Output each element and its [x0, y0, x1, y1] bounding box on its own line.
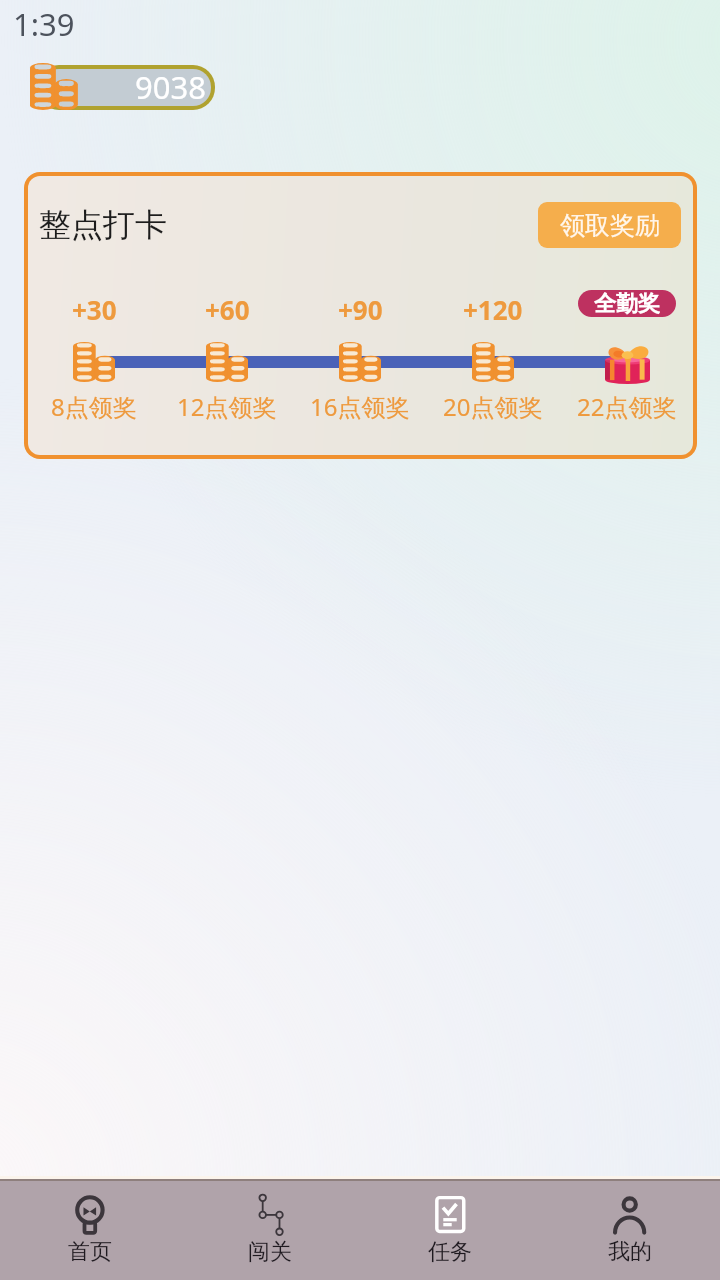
staticText: 整点打卡: [39, 205, 167, 245]
staticText: 20点领奖: [443, 390, 543, 423]
staticText: 9038: [135, 69, 206, 103]
staticText: 12点领奖: [177, 390, 277, 423]
staticText: 我的: [608, 1238, 652, 1266]
staticText: 闯关: [248, 1238, 292, 1266]
button[interactable]: Home: [0, 1181, 180, 1280]
staticText: 首页: [68, 1238, 112, 1266]
staticText: 16点领奖: [310, 390, 410, 423]
button[interactable]: Levels: [180, 1181, 360, 1280]
staticText: 领取奖励: [560, 210, 660, 241]
staticText: +60: [205, 292, 250, 327]
staticText: +120: [463, 292, 523, 327]
staticText: 22点领奖: [577, 390, 677, 423]
staticText: +90: [338, 292, 383, 327]
button[interactable]: Tasks: [360, 1181, 540, 1280]
button[interactable]: 全勤奖: [578, 290, 676, 317]
button[interactable]: 9038: [26, 61, 218, 113]
button[interactable]: 领取奖励: [538, 202, 681, 248]
staticText: 全勤奖: [594, 290, 660, 317]
staticText: 1:39: [13, 3, 75, 45]
staticText: 8点领奖: [51, 390, 137, 423]
button[interactable]: Profile: [540, 1181, 720, 1280]
staticText: +30: [72, 292, 117, 327]
staticText: 任务: [428, 1238, 472, 1266]
